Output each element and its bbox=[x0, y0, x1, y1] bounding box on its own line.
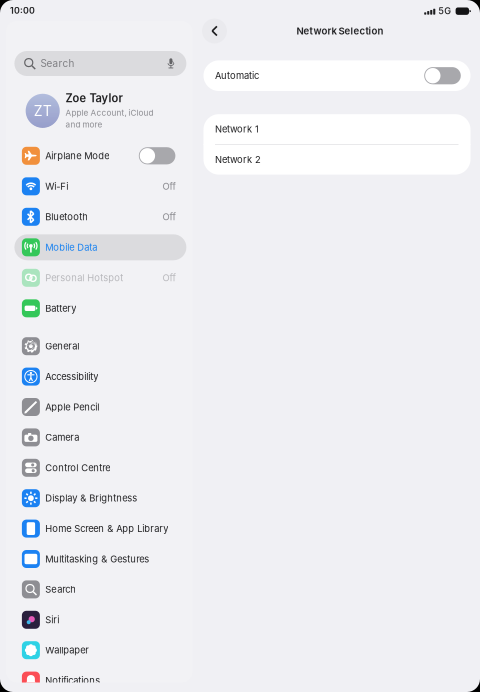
staticText: Off bbox=[162, 272, 175, 283]
button[interactable]: Mobile Data bbox=[14, 234, 186, 260]
staticText: Network 2 bbox=[215, 154, 261, 165]
staticText: Camera bbox=[45, 432, 79, 443]
button[interactable]: Search bbox=[14, 576, 186, 602]
button[interactable]: Back bbox=[202, 18, 227, 43]
button[interactable]: Home Screen & App Library bbox=[14, 516, 186, 542]
staticText: Automatic bbox=[215, 70, 259, 81]
button[interactable]: Search bbox=[14, 51, 186, 76]
button[interactable]: Network 1 bbox=[203, 114, 470, 144]
staticText: Battery bbox=[45, 303, 76, 314]
button[interactable]: ZT bbox=[14, 91, 186, 131]
staticText: Multitasking & Gestures bbox=[45, 553, 149, 565]
button[interactable]: Multitasking & Gestures bbox=[14, 546, 186, 572]
staticText: Zoe Taylor bbox=[65, 91, 122, 105]
button[interactable]: Personal Hotspot bbox=[14, 265, 186, 291]
button[interactable]: Bluetooth bbox=[14, 204, 186, 230]
staticText: ZT bbox=[34, 102, 52, 119]
staticText: Display & Brightness bbox=[45, 493, 137, 504]
button[interactable]: Network 2 bbox=[203, 145, 470, 175]
staticText: Network Selection bbox=[296, 25, 383, 37]
button[interactable]: Notifications bbox=[14, 668, 186, 692]
staticText: Accessibility bbox=[45, 371, 98, 382]
staticText: Off bbox=[162, 211, 175, 222]
button[interactable]: Wallpaper bbox=[14, 637, 186, 663]
button[interactable]: Wi-Fi bbox=[14, 173, 186, 199]
button[interactable]: Apple Pencil bbox=[14, 394, 186, 420]
button[interactable]: Siri bbox=[14, 607, 186, 633]
button[interactable]: Battery bbox=[14, 295, 186, 321]
staticText: Apple Account, iCloud bbox=[65, 108, 153, 118]
staticText: Airplane Mode bbox=[45, 150, 109, 161]
button[interactable]: Accessibility bbox=[14, 364, 186, 390]
button[interactable]: Control Centre bbox=[14, 455, 186, 481]
staticText: Wallpaper bbox=[45, 645, 89, 656]
staticText: and more bbox=[65, 120, 102, 129]
staticText: General bbox=[45, 341, 79, 352]
button[interactable]: Automatic bbox=[203, 60, 470, 91]
staticText: Network 1 bbox=[215, 123, 259, 135]
staticText: Home Screen & App Library bbox=[45, 523, 168, 534]
staticText: Search bbox=[45, 584, 76, 595]
staticText: Bluetooth bbox=[45, 211, 88, 222]
staticText: Apple Pencil bbox=[45, 401, 99, 413]
staticText: Wi-Fi bbox=[45, 181, 68, 192]
staticText: Personal Hotspot bbox=[45, 272, 123, 283]
staticText: 10:00 bbox=[10, 5, 35, 16]
staticText: 5G bbox=[438, 5, 451, 16]
staticText: Control Centre bbox=[45, 462, 110, 473]
button[interactable]: Camera bbox=[14, 424, 186, 450]
button[interactable]: Display & Brightness bbox=[14, 485, 186, 511]
staticText: Search bbox=[40, 57, 74, 69]
staticText: Mobile Data bbox=[45, 242, 97, 253]
button[interactable]: Airplane Mode bbox=[14, 143, 186, 169]
staticText: Off bbox=[162, 181, 175, 192]
button[interactable]: General bbox=[14, 333, 186, 359]
staticText: Siri bbox=[45, 614, 59, 625]
staticText: Notifications bbox=[45, 675, 100, 686]
